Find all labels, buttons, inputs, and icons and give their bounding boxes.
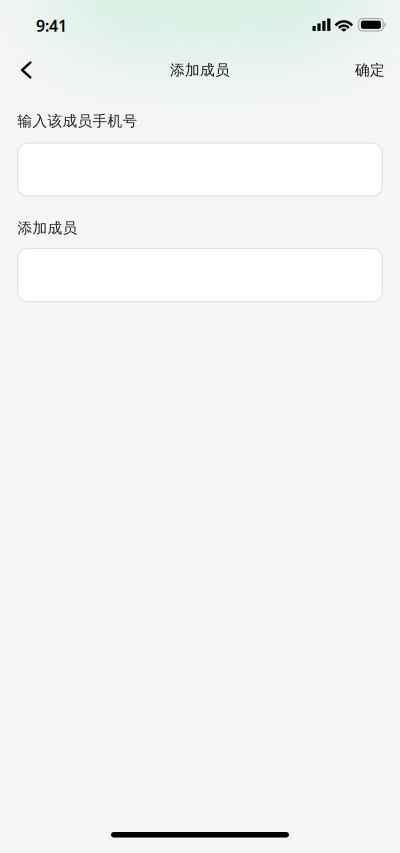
staticText: 添加成员 (170, 61, 230, 79)
button[interactable]: Back (0, 51, 44, 89)
button[interactable] (18, 248, 382, 301)
button[interactable]: 确定 (355, 51, 400, 89)
staticText: 确定 (355, 61, 385, 79)
staticText: 添加成员 (18, 219, 78, 237)
staticText: 输入该成员手机号 (18, 112, 138, 130)
staticText: 9:41 (36, 15, 67, 36)
button[interactable] (18, 143, 382, 196)
